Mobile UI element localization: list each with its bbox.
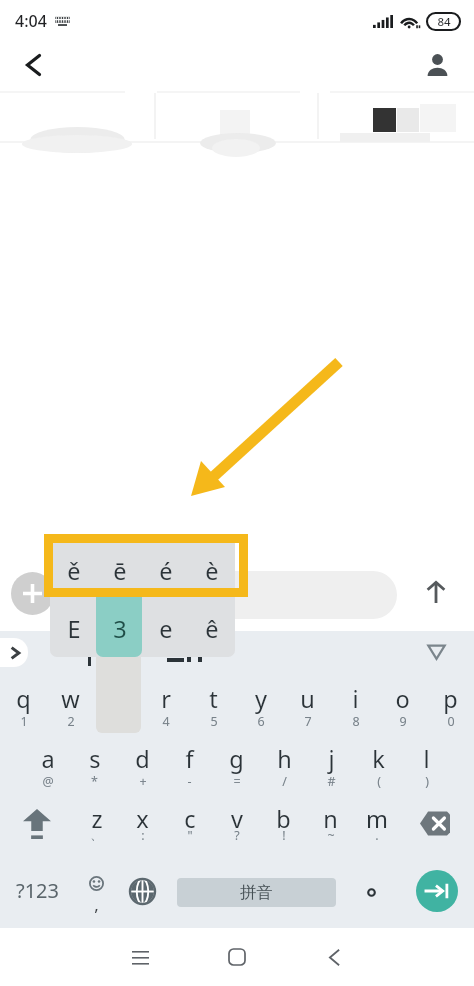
staticText: p (443, 683, 458, 715)
staticText: - (187, 773, 192, 790)
button[interactable]: q (0, 673, 47, 733)
staticText: e (159, 613, 173, 645)
staticText: x (136, 803, 149, 835)
staticText: f (185, 743, 194, 775)
button[interactable]: p (427, 673, 474, 733)
staticText: E (67, 613, 81, 645)
staticText: 、 (90, 827, 103, 843)
button[interactable]: o (379, 673, 426, 733)
button[interactable]: n (307, 793, 354, 853)
button[interactable]: w (47, 673, 94, 733)
staticText: v (231, 803, 243, 835)
button[interactable]: E (50, 596, 97, 657)
staticText: , (94, 893, 99, 916)
button[interactable]: Enter (416, 870, 458, 912)
button[interactable]: t (190, 673, 237, 733)
staticText: 4:04 (15, 10, 47, 32)
staticText: 4 (162, 713, 170, 730)
button[interactable]: v (213, 793, 260, 853)
button[interactable]: a (24, 733, 71, 793)
button[interactable]: g (213, 733, 260, 793)
button[interactable] (58, 571, 397, 619)
button[interactable]: 3 (96, 590, 142, 657)
staticText: ( (377, 773, 381, 790)
button[interactable]: z (73, 793, 120, 853)
button[interactable]: l (403, 733, 450, 793)
button[interactable]: e (143, 596, 189, 657)
button[interactable]: 3 (97, 596, 143, 657)
button[interactable]: Back (312, 935, 356, 979)
staticText: q (16, 683, 31, 715)
staticText: = (233, 773, 241, 790)
staticText: 84 (437, 14, 451, 30)
staticText: " (187, 827, 193, 844)
staticText: 8 (352, 713, 360, 730)
staticText: ē (113, 555, 127, 587)
button[interactable]: ē (97, 536, 143, 596)
button[interactable]: b (260, 793, 307, 853)
staticText: b (276, 803, 291, 835)
staticText: ! (282, 827, 286, 844)
staticText: k (372, 743, 385, 775)
button[interactable]: e (95, 673, 142, 733)
button[interactable]: Recent apps (118, 935, 162, 979)
staticText: ê (205, 613, 219, 645)
button[interactable]: Profile (416, 44, 458, 86)
staticText: # (327, 773, 336, 790)
button[interactable]: m (353, 793, 400, 853)
button[interactable]: c (166, 793, 213, 853)
button[interactable]: y (237, 673, 284, 733)
button[interactable]: ě (50, 536, 97, 596)
staticText: : (141, 827, 145, 844)
button[interactable]: d (119, 733, 166, 793)
staticText: ) (425, 773, 429, 790)
button[interactable]: k (355, 733, 402, 793)
staticText: l (423, 743, 430, 775)
button[interactable]: Send (414, 570, 458, 614)
staticText: ? (234, 827, 240, 844)
button[interactable]: Switch language (120, 869, 164, 913)
staticText: ě (67, 555, 81, 587)
button[interactable]: Shift (0, 793, 72, 853)
staticText: g (229, 743, 244, 775)
staticText: 7 (304, 713, 312, 730)
button[interactable]: i (332, 673, 379, 733)
staticText: t (209, 683, 218, 715)
button[interactable]: Period (355, 878, 387, 907)
button[interactable]: ê (189, 596, 235, 657)
button[interactable]: u (284, 673, 331, 733)
staticText: 2 (67, 713, 75, 730)
button[interactable]: è (189, 536, 235, 596)
staticText: d (135, 743, 150, 775)
button[interactable]: Home (215, 935, 259, 979)
button[interactable]: Back (12, 44, 54, 86)
staticText: 6 (257, 713, 265, 730)
button[interactable]: More suggestions (0, 638, 28, 667)
button[interactable]: Hide keyboard (420, 636, 452, 668)
staticText: 拼音 (240, 882, 273, 903)
button[interactable]: Emoji (74, 853, 118, 928)
button[interactable]: Add attachment (11, 572, 54, 615)
staticText: s (89, 743, 101, 775)
button[interactable]: Backspace (404, 793, 474, 853)
staticText: @ (42, 773, 54, 790)
staticText: w (61, 683, 80, 715)
staticText: è (205, 555, 219, 587)
staticText: 0 (447, 713, 455, 730)
button[interactable]: 拼音 (177, 878, 336, 907)
staticText: m (366, 803, 388, 835)
staticText: ?123 (16, 877, 59, 904)
staticText: i (352, 683, 359, 715)
staticText: z (91, 803, 103, 835)
button[interactable]: f (166, 733, 213, 793)
button[interactable]: r (142, 673, 189, 733)
button[interactable]: j (308, 733, 355, 793)
button[interactable]: x (119, 793, 166, 853)
button[interactable]: h (261, 733, 308, 793)
staticText: . (375, 827, 379, 844)
staticText: ~ (327, 827, 335, 844)
button[interactable]: ?123 (0, 853, 74, 928)
button[interactable]: s (71, 733, 118, 793)
staticText: n (323, 803, 338, 835)
button[interactable]: é (143, 536, 189, 596)
